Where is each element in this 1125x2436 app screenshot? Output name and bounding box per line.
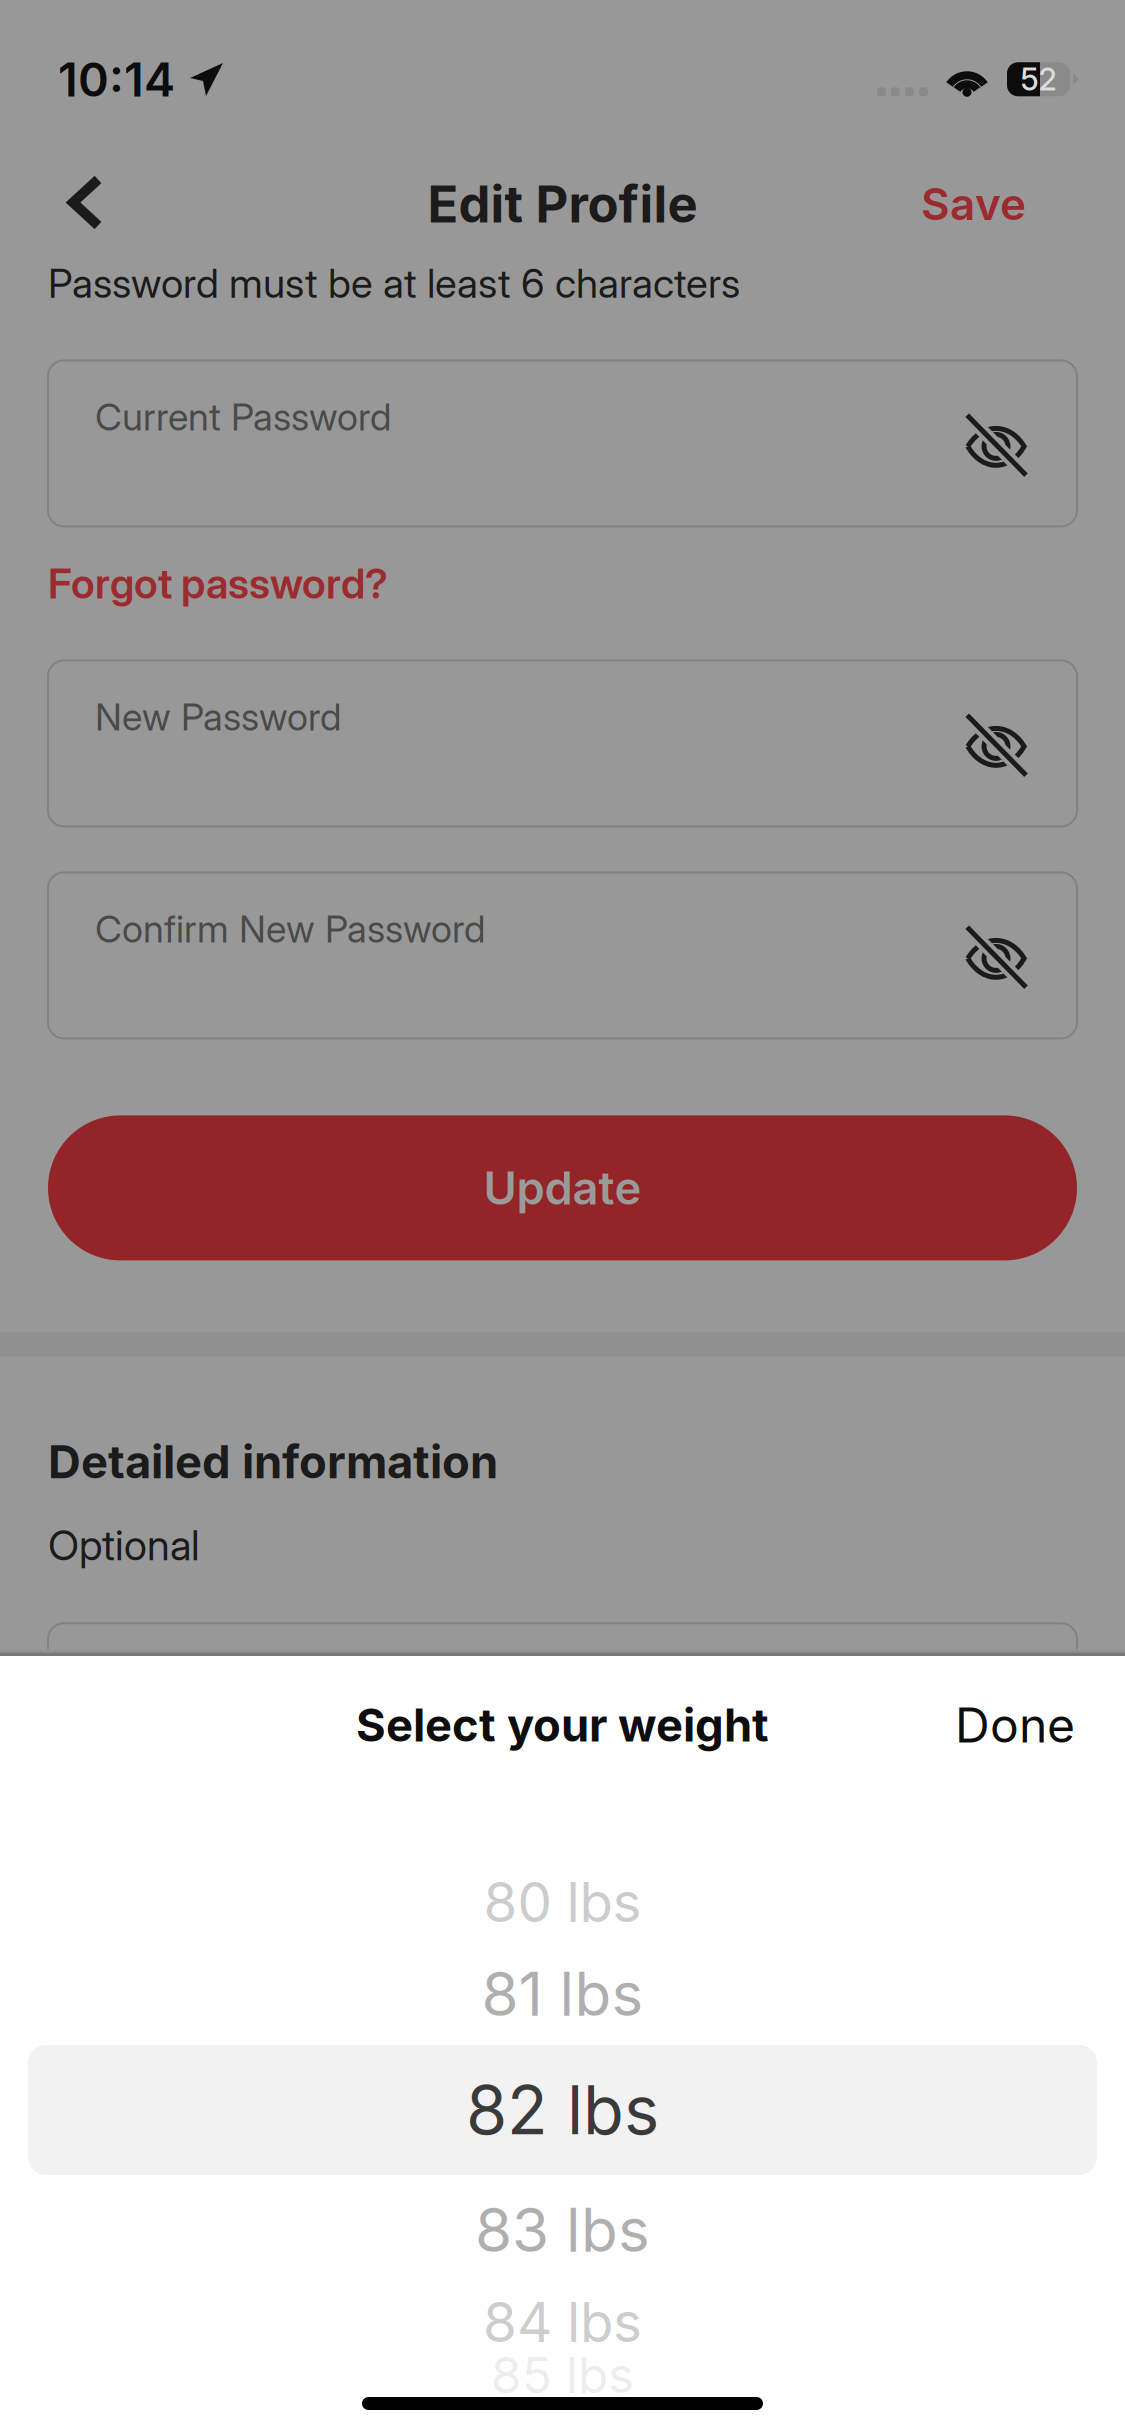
- staticText: Password must be at least 6 characters: [48, 259, 740, 307]
- button[interactable]: 80 lbs: [0, 1856, 1125, 1948]
- staticText: 83 lbs: [475, 2194, 650, 2266]
- staticText: Detailed information: [48, 1434, 498, 1489]
- button[interactable]: Back: [0, 142, 129, 241]
- staticText: 52: [1020, 61, 1056, 98]
- staticText: Save: [921, 177, 1026, 231]
- button[interactable]: Forgot password?: [48, 549, 388, 617]
- button[interactable]: Update: [48, 1115, 1077, 1260]
- staticText: Edit Profile: [427, 173, 697, 235]
- button[interactable]: 85 lbs: [0, 2354, 1125, 2396]
- button[interactable]: 81 lbs: [0, 1948, 1125, 2040]
- button[interactable]: 84 lbs: [0, 2276, 1125, 2368]
- staticText: 85 lbs: [491, 2345, 634, 2405]
- staticText: Optional: [48, 1520, 200, 1570]
- staticText: Current Password: [95, 394, 391, 440]
- staticText: 82 lbs: [466, 2070, 659, 2150]
- staticText: 81 lbs: [481, 1958, 643, 2030]
- staticText: 10:14: [58, 51, 175, 108]
- button[interactable]: 83 lbs: [0, 2184, 1125, 2276]
- staticText: 84 lbs: [483, 2289, 642, 2355]
- staticText: New Password: [95, 694, 341, 740]
- staticText: Confirm New Password: [95, 906, 485, 952]
- staticText: Update: [483, 1160, 641, 1215]
- staticText: Forgot password?: [48, 558, 388, 608]
- button[interactable]: 82 lbs: [0, 2045, 1125, 2175]
- staticText: 80 lbs: [483, 1869, 641, 1935]
- staticText: Select your weight: [356, 1698, 769, 1752]
- button[interactable]: Save: [887, 143, 1073, 241]
- staticText: Done: [955, 1696, 1075, 1754]
- button[interactable]: Done: [927, 1678, 1103, 1772]
